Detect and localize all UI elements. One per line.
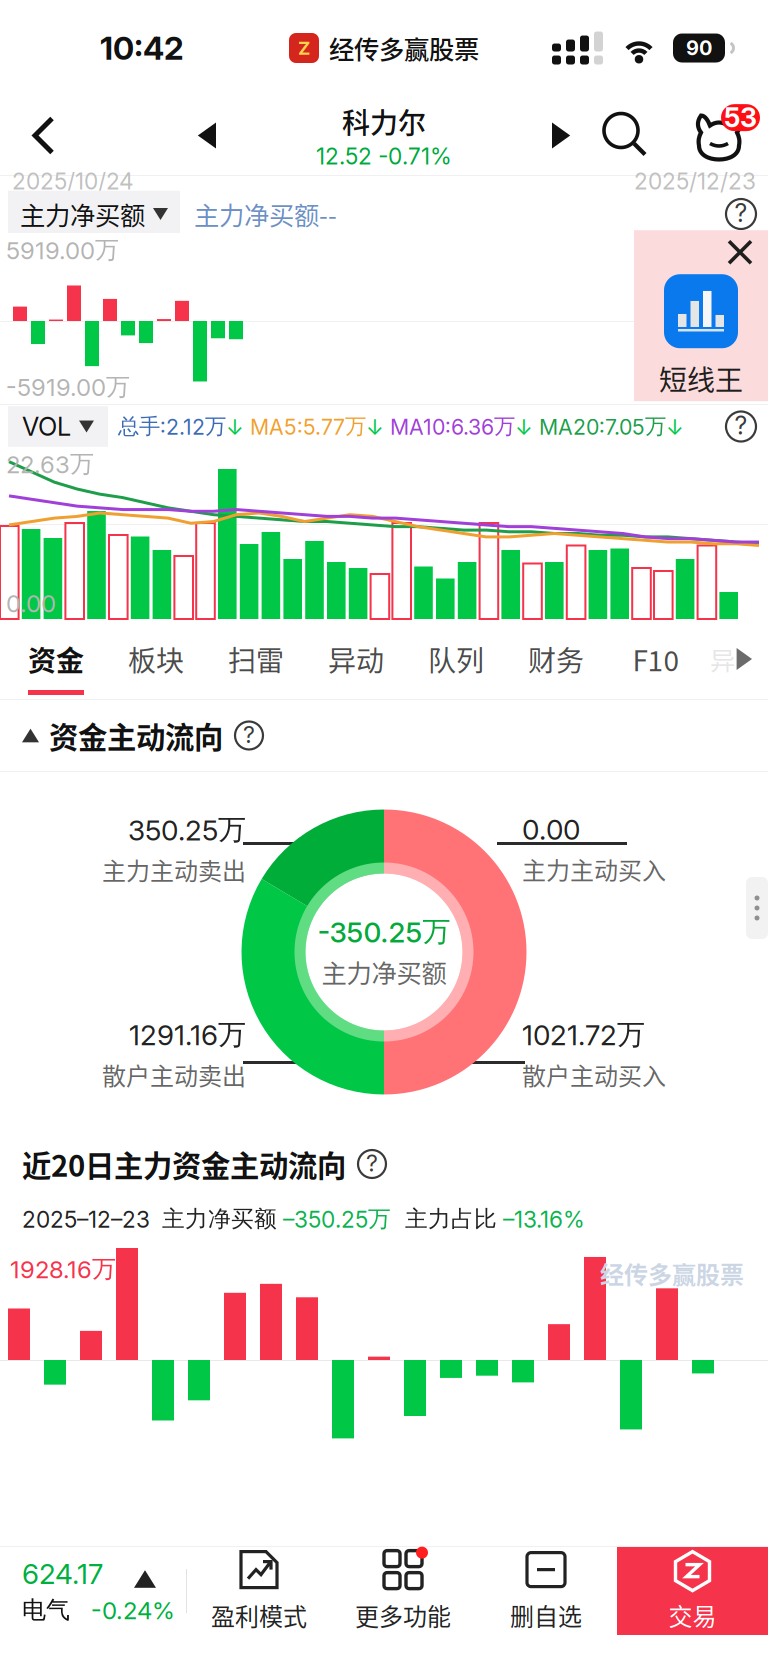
staticText: 总手:2.12万↓ MA5:5.77万↓ MA10:6.36万↓ MA20:7.… xyxy=(118,413,684,440)
staticText: 经传多赢股票 xyxy=(329,30,479,66)
staticText: ? xyxy=(366,1149,378,1177)
staticText: 主力净买额-- xyxy=(194,196,337,232)
button[interactable]: 下一支 xyxy=(536,108,586,162)
button[interactable]: 主力净买额 xyxy=(8,191,180,237)
staticText: 624.17 xyxy=(22,1557,103,1591)
staticText: ? xyxy=(734,410,747,440)
staticText: 2025/12/23 xyxy=(634,168,756,195)
button[interactable]: 关闭广告 xyxy=(718,230,762,274)
staticText: VOL xyxy=(22,411,71,442)
staticText: ? xyxy=(734,198,747,228)
staticText: 350.25万 xyxy=(128,812,246,847)
button[interactable]: 返回 xyxy=(0,103,80,167)
button[interactable]: 624.17 xyxy=(0,1547,186,1635)
button[interactable]: VOL xyxy=(8,406,108,447)
staticText: 板块 xyxy=(128,639,184,679)
staticText: 1291.16万 xyxy=(129,1017,246,1052)
button[interactable]: 异动 xyxy=(306,621,406,697)
staticText: 2025/10/24 xyxy=(12,168,134,195)
staticText: 财务 xyxy=(528,639,584,679)
button[interactable]: F10 xyxy=(606,621,706,697)
button[interactable]: 帮助 xyxy=(724,197,768,231)
staticText: 短线王 xyxy=(659,358,743,399)
staticText: -5919.00万 xyxy=(6,372,130,402)
button[interactable]: 帮助 xyxy=(724,409,768,443)
button[interactable]: 上一支 xyxy=(182,108,232,162)
staticText: Z xyxy=(298,37,310,59)
staticText: 盈利模式 xyxy=(211,1598,307,1632)
staticText: 主力主动买入 xyxy=(522,852,666,886)
button[interactable]: 队列 xyxy=(406,621,506,697)
staticText: 0.00 xyxy=(522,813,580,847)
staticText: 0.00 xyxy=(6,589,56,618)
staticText: ? xyxy=(243,720,255,748)
staticText: 散户主动买入 xyxy=(522,1057,666,1092)
staticText: -350.25万 xyxy=(317,914,450,949)
staticText: 主力主动卖出 xyxy=(102,852,246,887)
button[interactable]: 更多标签 xyxy=(737,648,768,670)
staticText: 散户主动卖出 xyxy=(102,1057,246,1092)
staticText: 队列 xyxy=(428,639,484,679)
staticText: 12.52 -0.71% xyxy=(316,143,452,170)
staticText: 主力净买额 xyxy=(321,953,446,990)
button[interactable]: 更多功能 xyxy=(331,1547,475,1635)
staticText: 异动 xyxy=(328,639,384,679)
staticText: 更多功能 xyxy=(355,1598,451,1632)
staticText: 主力净买额 xyxy=(20,196,145,232)
button[interactable]: 搜索 xyxy=(604,113,648,157)
button[interactable]: 盈利模式 xyxy=(187,1547,331,1635)
staticText: 近20日主力资金主动流向 xyxy=(22,1143,346,1185)
staticText: 资金主动流向 xyxy=(49,714,223,757)
staticText: 53 xyxy=(724,101,757,134)
button[interactable]: 板块 xyxy=(106,621,206,697)
staticText: 异 xyxy=(710,641,735,677)
button[interactable]: 资金 xyxy=(6,621,106,697)
staticText: 经传多赢股票 xyxy=(600,1256,744,1291)
button[interactable]: 消息 xyxy=(690,106,748,164)
staticText: 电气 -0.24% xyxy=(22,1595,175,1625)
staticText: F10 xyxy=(632,639,679,679)
button[interactable]: 财务 xyxy=(506,621,606,697)
staticText: 2025–12–23 主力净买额 –350.25万 主力占比 –13.16% xyxy=(22,1205,585,1233)
button[interactable]: 交易 xyxy=(617,1547,768,1635)
staticText: 资金 xyxy=(28,639,84,679)
staticText: 5919.00万 xyxy=(6,235,119,265)
staticText: 扫雷 xyxy=(228,639,284,679)
staticText: 删自选 xyxy=(510,1598,582,1632)
staticText: 交易 xyxy=(668,1598,716,1632)
staticText: 1928.16万 xyxy=(10,1254,116,1284)
button[interactable]: 扫雷 xyxy=(206,621,306,697)
staticText: 1021.72万 xyxy=(522,1017,645,1052)
staticText: 90 xyxy=(686,36,712,60)
staticText: 10:42 xyxy=(100,29,184,67)
staticText: 科力尔 xyxy=(342,101,426,141)
button[interactable]: 删自选 xyxy=(475,1547,617,1635)
staticText: 22.63万 xyxy=(6,449,94,479)
